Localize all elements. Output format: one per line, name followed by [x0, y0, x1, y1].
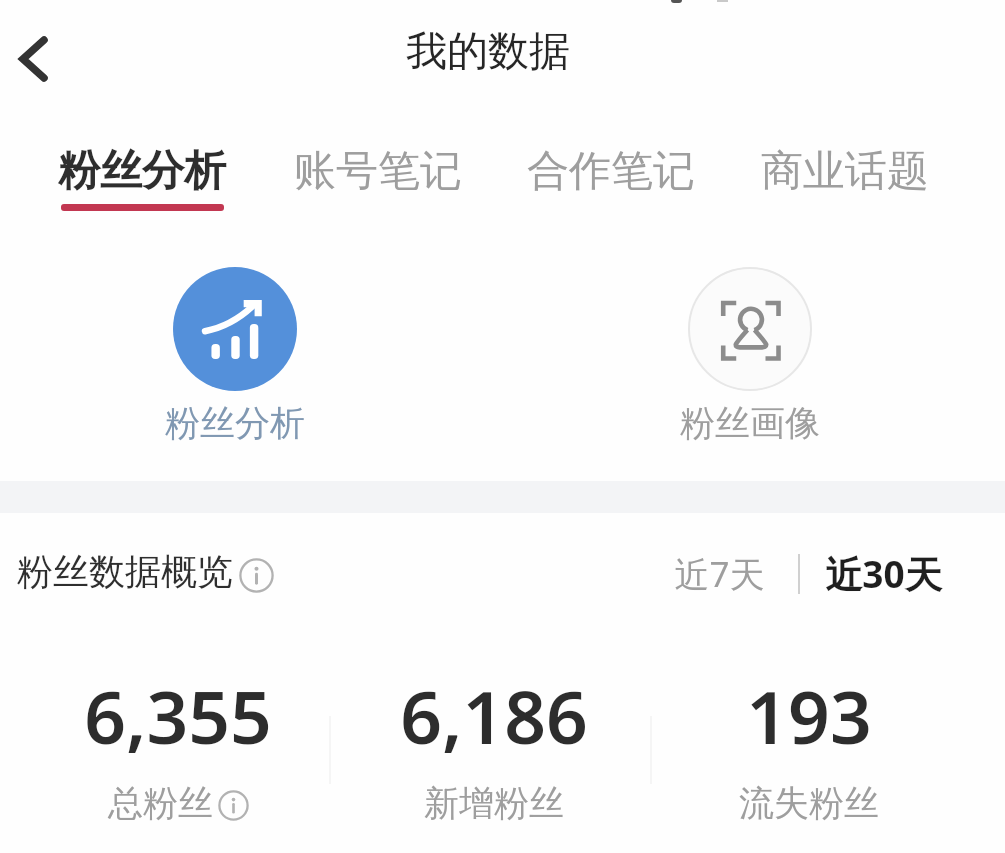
button[interactable]: 粉丝分析	[125, 267, 345, 445]
staticText: 新增粉丝	[424, 781, 564, 825]
button[interactable]: 账号笔记	[294, 127, 462, 211]
staticText: 6,186	[400, 666, 588, 765]
staticText: 193	[746, 666, 872, 765]
staticText: 近30天	[825, 548, 942, 599]
button[interactable]: 近7天	[674, 550, 765, 598]
staticText: 6,355	[84, 666, 272, 765]
button[interactable]: Back	[0, 14, 90, 104]
staticText: 粉丝分析	[58, 145, 226, 198]
staticText: 我的数据	[406, 26, 570, 78]
staticText: 流失粉丝	[739, 781, 879, 825]
button[interactable]: 近30天	[825, 548, 942, 599]
staticText: 粉丝分析	[165, 401, 305, 445]
button[interactable]: 粉丝分析	[58, 127, 226, 211]
button[interactable]: 粉丝数据概览	[17, 549, 274, 594]
staticText: 粉丝数据概览	[17, 549, 233, 594]
staticText: 近7天	[674, 550, 765, 598]
staticText: 商业话题	[761, 145, 929, 198]
staticText: 合作笔记	[527, 145, 695, 198]
staticText: 粉丝画像	[680, 401, 820, 445]
staticText: 总粉丝	[108, 781, 213, 825]
button[interactable]: 商业话题	[761, 127, 929, 211]
staticText: 账号笔记	[294, 145, 462, 198]
button[interactable]: 粉丝画像	[640, 267, 860, 445]
button[interactable]: 6,355	[28, 666, 328, 825]
button[interactable]: 6,186	[344, 666, 644, 825]
button[interactable]: 193	[659, 666, 959, 825]
button[interactable]: 合作笔记	[527, 127, 695, 211]
